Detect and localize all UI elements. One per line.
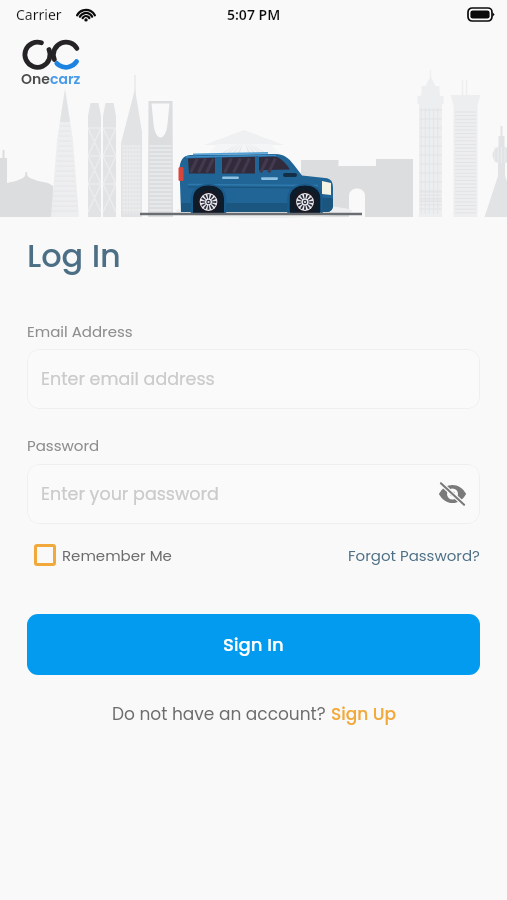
button[interactable]: Sign In xyxy=(27,614,480,675)
button[interactable]: Forgot Password? xyxy=(348,541,480,570)
staticText: carz xyxy=(50,69,81,89)
staticText: Password xyxy=(27,435,100,456)
staticText: Do not have an account? xyxy=(112,702,331,726)
staticText: Enter email address xyxy=(41,367,215,392)
button[interactable]: Show password xyxy=(436,478,468,510)
staticText: Enter your password xyxy=(41,482,219,507)
staticText: 5:07 PM xyxy=(227,5,281,24)
staticText: One xyxy=(21,69,50,89)
staticText: Log In xyxy=(27,233,121,278)
staticText: Remember Me xyxy=(62,545,172,566)
button[interactable]: Remember Me xyxy=(27,540,172,570)
button[interactable]: Sign Up xyxy=(331,702,396,726)
staticText: Sign In xyxy=(223,632,284,657)
staticText: Carrier xyxy=(16,5,62,24)
button[interactable]: Enter email address xyxy=(27,349,480,409)
staticText: Email Address xyxy=(27,321,133,342)
button[interactable]: Enter your password xyxy=(27,464,480,524)
